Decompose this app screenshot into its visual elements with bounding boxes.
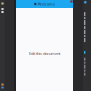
- button[interactable]: Assistant: [84, 1, 87, 4]
- button[interactable]: Search: [1, 8, 4, 10]
- button[interactable]: Accounts: [1, 86, 4, 88]
- button[interactable]: Explorer: [1, 2, 4, 4]
- button[interactable]: Source Control: [1, 11, 4, 13]
- staticText: Edit this document: [29, 51, 60, 56]
- button[interactable]: Warnings: [1, 83, 4, 85]
- staticText: Welcome: [38, 1, 55, 7]
- button[interactable]: Close: [70, 0, 73, 3]
